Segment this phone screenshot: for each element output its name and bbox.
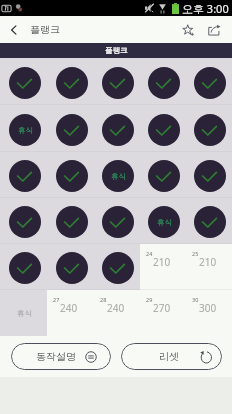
button[interactable]: [0, 58, 47, 105]
button[interactable]: 27: [47, 290, 94, 336]
staticText: 210: [153, 255, 171, 269]
button[interactable]: [94, 244, 140, 290]
button[interactable]: 휴식: [0, 290, 47, 336]
staticText: 240: [107, 301, 125, 315]
button[interactable]: 30: [186, 290, 232, 336]
staticText: 리셋: [159, 350, 179, 363]
staticText: 270: [153, 301, 171, 315]
button[interactable]: [47, 58, 94, 105]
button[interactable]: [47, 244, 94, 290]
button[interactable]: [47, 152, 94, 198]
button[interactable]: 29: [140, 290, 186, 336]
button[interactable]: [0, 198, 47, 244]
staticText: 오후 3:00: [182, 1, 229, 16]
staticText: 240: [60, 301, 78, 315]
button[interactable]: [186, 58, 232, 105]
button[interactable]: [186, 105, 232, 152]
button[interactable]: [140, 105, 186, 152]
staticText: 플랭크: [105, 46, 128, 55]
staticText: 300: [199, 301, 217, 315]
button[interactable]: 휴식: [0, 105, 47, 152]
button[interactable]: Back: [0, 16, 27, 43]
button[interactable]: 28: [94, 290, 140, 336]
button[interactable]: [94, 198, 140, 244]
staticText: 28: [100, 296, 107, 303]
staticText: 24: [146, 250, 153, 257]
button[interactable]: [47, 105, 94, 152]
button[interactable]: 동작설명: [11, 343, 111, 370]
staticText: 210: [199, 255, 217, 269]
staticText: 29: [146, 296, 153, 303]
button[interactable]: 리셋: [121, 343, 222, 370]
button[interactable]: [140, 58, 186, 105]
button[interactable]: [0, 152, 47, 198]
button[interactable]: [47, 198, 94, 244]
button[interactable]: [94, 58, 140, 105]
button[interactable]: [186, 198, 232, 244]
staticText: 휴식: [18, 126, 33, 135]
staticText: 동작설명: [36, 350, 76, 363]
button[interactable]: 24: [140, 244, 186, 290]
staticText: 25: [192, 250, 199, 257]
button[interactable]: 휴식: [140, 198, 186, 244]
staticText: 휴식: [17, 309, 32, 318]
button[interactable]: 휴식: [94, 152, 140, 198]
button[interactable]: [186, 152, 232, 198]
button[interactable]: [0, 244, 47, 290]
button[interactable]: 25: [186, 244, 232, 290]
staticText: 27: [53, 296, 60, 303]
button[interactable]: Favorite: [175, 16, 201, 43]
button[interactable]: [140, 152, 186, 198]
button[interactable]: [94, 105, 140, 152]
staticText: 휴식: [111, 172, 126, 181]
staticText: 30: [192, 296, 199, 303]
staticText: 휴식: [157, 218, 172, 227]
button[interactable]: Share: [201, 16, 227, 43]
staticText: 플랭크: [30, 23, 60, 36]
